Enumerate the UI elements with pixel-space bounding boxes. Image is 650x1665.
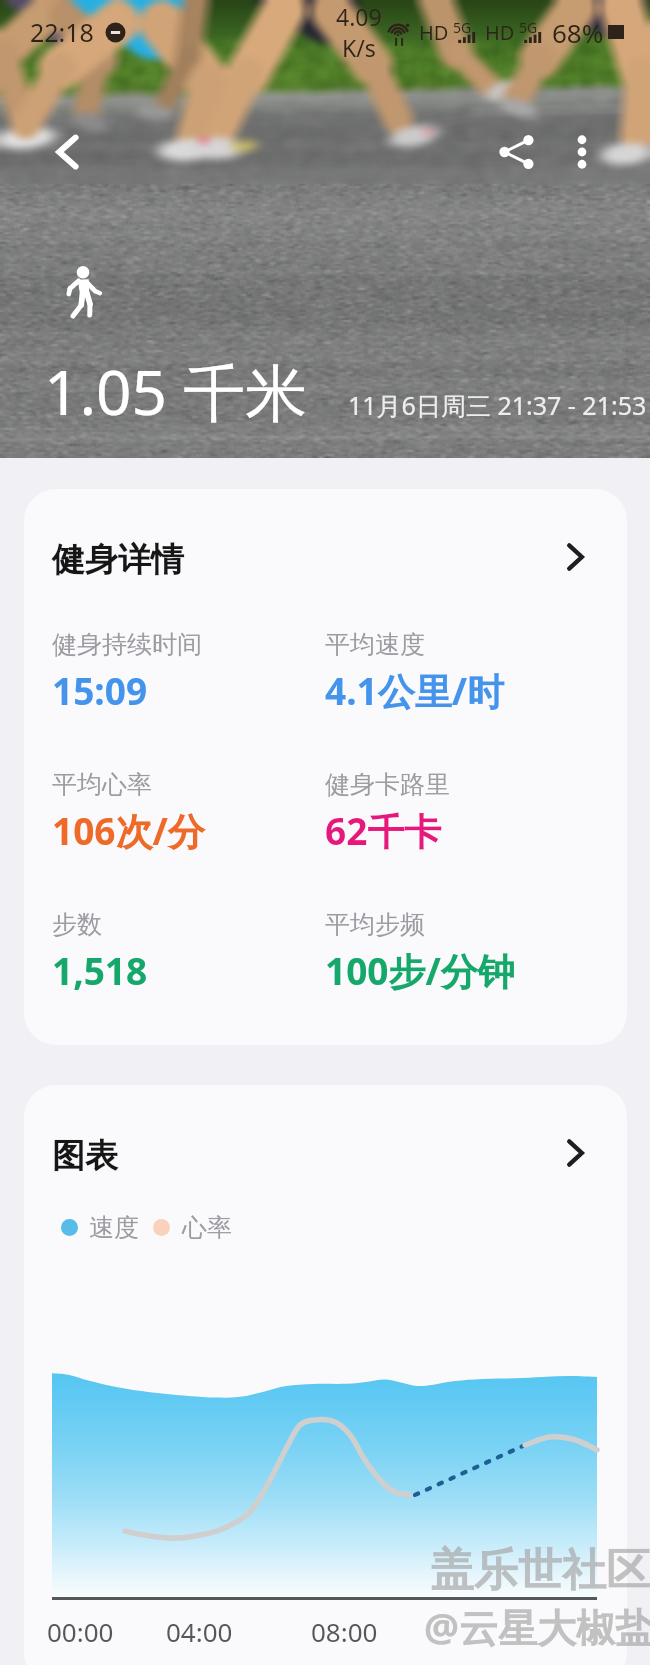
staticText: 100步/分钟 xyxy=(325,945,515,996)
staticText: 08:00 xyxy=(311,1614,378,1649)
staticText: 平均心率 xyxy=(52,769,152,800)
staticText: 平均速度 xyxy=(325,629,425,660)
staticText: 速度 xyxy=(89,1212,139,1243)
staticText: 5G xyxy=(453,18,472,37)
staticText: 图表 xyxy=(52,1135,118,1177)
staticText: 106次/分 xyxy=(52,805,205,856)
staticText: 盖乐世社区 xyxy=(430,1543,650,1598)
staticText: 健身持续时间 xyxy=(52,629,202,660)
staticText: 1.05 千米 xyxy=(44,349,308,434)
button[interactable]: Share xyxy=(486,121,548,183)
staticText: 4.1公里/时 xyxy=(325,665,505,716)
staticText: 11月6日周三 21:37 - 21:53 xyxy=(348,388,647,422)
staticText: 4.09 xyxy=(336,1,382,32)
staticText: 62千卡 xyxy=(325,805,442,856)
staticText: 1,518 xyxy=(52,945,148,995)
staticText: @云星大椒盐 xyxy=(424,1600,650,1653)
staticText: 健身卡路里 xyxy=(325,769,450,800)
button[interactable]: More options xyxy=(552,122,612,182)
staticText: 04:00 xyxy=(166,1614,233,1649)
staticText: 22:18 xyxy=(30,15,94,49)
staticText: HD xyxy=(485,19,515,46)
staticText: 平均步频 xyxy=(325,909,425,940)
staticText: 心率 xyxy=(182,1212,232,1243)
staticText: 步数 xyxy=(52,909,102,940)
button[interactable]: 图表 xyxy=(24,1085,627,1181)
staticText: HD xyxy=(419,19,449,46)
staticText: 健身详情 xyxy=(52,539,184,581)
button[interactable]: 健身详情 xyxy=(24,489,627,585)
staticText: 5G xyxy=(519,18,538,37)
staticText: 68% xyxy=(552,15,604,50)
staticText: 15:09 xyxy=(52,665,148,715)
button[interactable]: Back xyxy=(38,122,98,182)
staticText: 00:00 xyxy=(47,1614,114,1649)
staticText: K/s xyxy=(342,32,376,63)
